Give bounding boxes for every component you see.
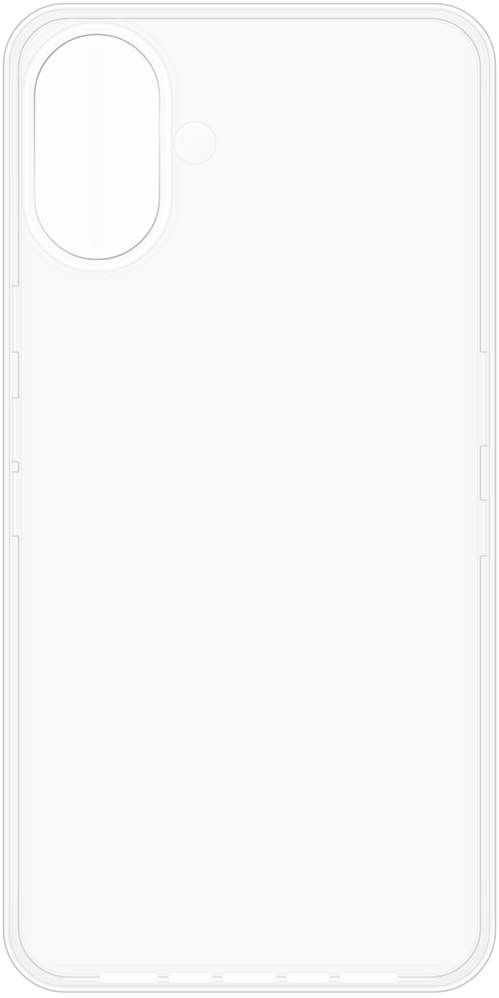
button[interactable]: Clear protective phone case, back view <box>0 0 499 998</box>
